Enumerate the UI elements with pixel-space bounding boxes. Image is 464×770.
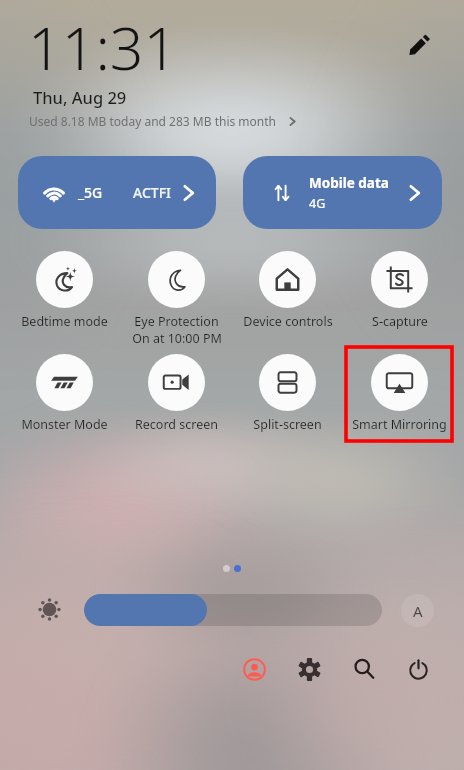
staticText: Used 8.18 MB today and 283 MB this month <box>29 113 276 129</box>
staticText: Smart Mirroring <box>352 416 447 433</box>
button[interactable]: Brightness <box>84 594 382 626</box>
staticText: Eye Protection <box>134 313 219 330</box>
button[interactable]: Edit <box>399 24 439 64</box>
button[interactable]: S-capture <box>344 251 455 330</box>
staticText: Thu, Aug 29 <box>33 86 127 108</box>
staticText: S-capture <box>372 313 428 330</box>
button[interactable]: Split-screen <box>232 354 343 433</box>
button[interactable]: Record screen <box>121 354 232 433</box>
button[interactable]: Monster Mode <box>9 354 120 433</box>
button[interactable]: Bedtime mode <box>9 251 120 330</box>
button[interactable]: Search <box>345 650 383 688</box>
staticText: ACTFI <box>133 183 171 202</box>
staticText: Monster Mode <box>21 416 108 433</box>
button[interactable]: Mobile data <box>243 156 442 229</box>
staticText: On at 10:00 PM <box>132 330 222 347</box>
button[interactable]: Smart Mirroring <box>344 354 455 433</box>
staticText: A <box>413 601 423 621</box>
staticText: _5G <box>78 183 103 202</box>
button[interactable]: Power <box>399 650 437 688</box>
staticText: Device controls <box>243 313 333 330</box>
button[interactable]: Device controls <box>232 251 343 330</box>
staticText: Mobile data <box>309 174 389 192</box>
button[interactable]: Settings <box>290 650 328 688</box>
staticText: 4G <box>309 195 326 212</box>
button[interactable]: A <box>401 594 434 627</box>
button[interactable]: _5G <box>18 156 216 229</box>
staticText: Bedtime mode <box>21 313 108 330</box>
staticText: Split-screen <box>253 416 322 433</box>
button[interactable]: Account <box>235 650 273 688</box>
staticText: Record screen <box>135 416 218 433</box>
button[interactable]: Used 8.18 MB today and 283 MB this month <box>29 113 299 129</box>
staticText: 11:31 <box>28 7 178 87</box>
button[interactable]: Eye Protection <box>121 251 232 347</box>
